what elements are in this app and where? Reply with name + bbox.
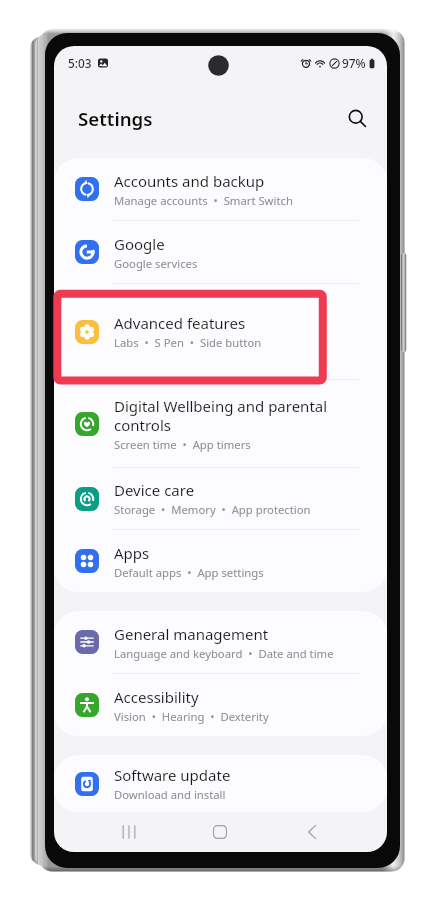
staticText: Apps xyxy=(114,543,150,563)
staticText: Device care xyxy=(114,480,195,500)
staticText: General management xyxy=(114,624,269,644)
button[interactable]: Advanced features xyxy=(54,284,387,380)
staticText: 97% xyxy=(342,55,366,71)
staticText: Settings xyxy=(78,106,153,131)
staticText: Default apps • App settings xyxy=(114,565,264,580)
button[interactable]: Home xyxy=(174,812,266,852)
staticText: Download and install xyxy=(114,787,226,802)
button[interactable]: Google xyxy=(54,221,387,284)
staticText: Digital Wellbeing and parental controls xyxy=(114,396,328,435)
staticText: Manage accounts • Smart Switch xyxy=(114,193,293,208)
staticText: Labs • S Pen • Side button xyxy=(114,335,262,350)
staticText: Language and keyboard • Date and time xyxy=(114,646,334,661)
staticText: Accounts and backup xyxy=(114,171,265,191)
button[interactable]: Accessibility xyxy=(54,674,387,736)
staticText: 5:03 xyxy=(68,55,92,71)
button[interactable]: Accounts and backup xyxy=(54,158,387,221)
staticText: Accessibility xyxy=(114,687,199,707)
staticText: Google xyxy=(114,234,165,254)
staticText: Google services xyxy=(114,256,198,271)
button[interactable]: Back xyxy=(266,812,358,852)
button[interactable]: Digital Wellbeing and parental controls xyxy=(54,380,387,468)
staticText: Screen time • App timers xyxy=(114,437,251,452)
staticText: Storage • Memory • App protection xyxy=(114,502,311,517)
staticText: Vision • Hearing • Dexterity xyxy=(114,709,269,724)
button[interactable]: Software update xyxy=(54,755,387,812)
staticText: Software update xyxy=(114,765,231,785)
button[interactable]: General management xyxy=(54,611,387,674)
staticText: Advanced features xyxy=(114,313,246,333)
button[interactable]: Apps xyxy=(54,530,387,592)
button[interactable]: Recent apps xyxy=(83,812,174,852)
button[interactable]: Search xyxy=(340,101,375,136)
button[interactable]: Device care xyxy=(54,468,387,530)
